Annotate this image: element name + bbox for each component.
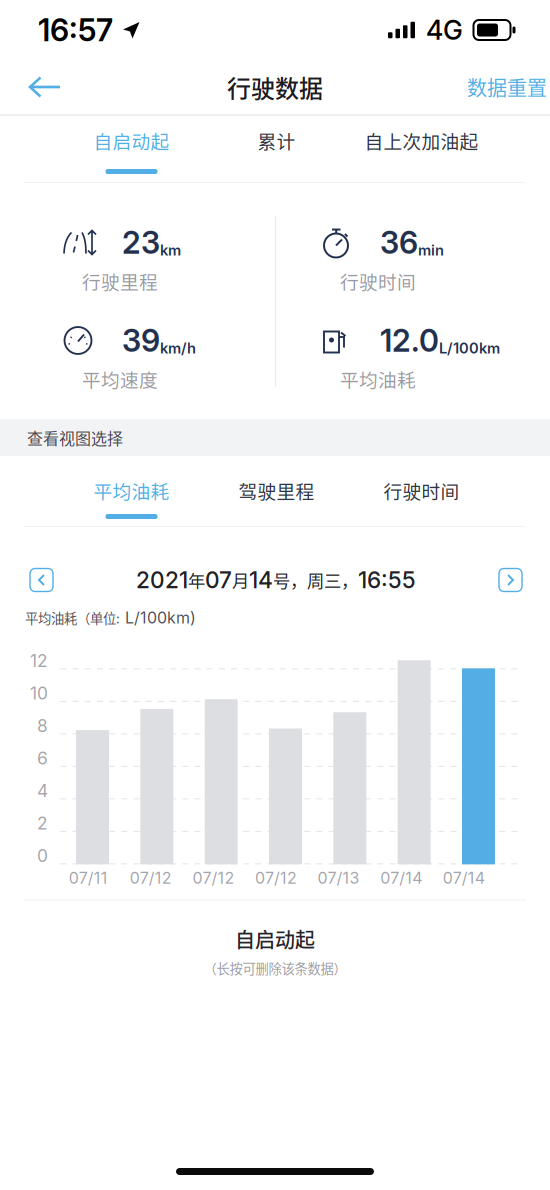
staticText: 14 (249, 566, 273, 594)
staticText: 行驶数据 (227, 70, 323, 104)
staticText: 月 (232, 567, 249, 593)
staticText: 驾驶里程 (238, 477, 314, 504)
staticText: 行驶时间 (340, 267, 416, 294)
button[interactable]: 数据重置 (467, 57, 547, 116)
staticText: 07/13 (318, 868, 360, 888)
button[interactable]: Previous day (30, 568, 53, 591)
staticText: （长按可删除该条数据） (203, 958, 346, 978)
button[interactable]: 自上次加油起 (349, 116, 494, 182)
staticText: 36 (380, 224, 418, 261)
staticText: 自上次加油起 (364, 127, 478, 154)
staticText: 6 (37, 748, 48, 769)
staticText: 07/11 (69, 868, 108, 888)
staticText: 2021 (136, 566, 188, 594)
staticText: min (418, 241, 444, 259)
staticText: 07/12 (255, 868, 297, 888)
staticText: 查看视图选择 (27, 426, 123, 449)
button[interactable]: 累计 (204, 116, 349, 182)
staticText: 数据重置 (467, 72, 547, 101)
button[interactable]: Back (10, 60, 79, 113)
staticText: 16:57 (38, 11, 113, 48)
staticText: 自启动起 (93, 127, 169, 154)
staticText: 07/14 (443, 868, 485, 888)
staticText: 07/12 (192, 868, 234, 888)
staticText: 0 (37, 845, 48, 866)
staticText: 16:55 (358, 566, 416, 594)
staticText: km (160, 241, 181, 259)
staticText: 23 (122, 224, 160, 261)
button[interactable]: 平均油耗 (59, 456, 204, 526)
staticText: 12.0 (380, 322, 439, 359)
staticText: 平均油耗 (93, 477, 169, 504)
button[interactable]: 自启动起 (59, 116, 204, 182)
button[interactable]: 行驶时间 (349, 456, 494, 526)
staticText: 07 (205, 566, 232, 594)
staticText: L/100km) (120, 608, 196, 627)
button[interactable]: Next day (499, 568, 522, 591)
staticText: 4G (426, 14, 463, 46)
staticText: L/100km (439, 339, 500, 357)
staticText: 07/12 (130, 868, 172, 888)
staticText: 行驶时间 (383, 477, 459, 504)
staticText: 4 (37, 780, 48, 801)
staticText: 平均速度 (82, 365, 158, 392)
staticText: km/h (160, 339, 196, 357)
button[interactable]: 驾驶里程 (204, 456, 349, 526)
staticText: 累计 (257, 127, 295, 154)
staticText: 行驶里程 (82, 267, 158, 294)
staticText: 39 (122, 322, 160, 359)
staticText: 8 (37, 715, 48, 736)
staticText: 号，周三， (273, 567, 358, 593)
staticText: 平均油耗 (340, 365, 416, 392)
staticText: 年 (188, 567, 205, 593)
staticText: 07/14 (380, 868, 422, 888)
staticText: 2 (37, 813, 48, 834)
staticText: 自启动起 (235, 924, 315, 953)
staticText: 10 (30, 683, 48, 704)
staticText: 12 (30, 650, 48, 671)
staticText: 平均油耗（单位: (25, 608, 120, 627)
